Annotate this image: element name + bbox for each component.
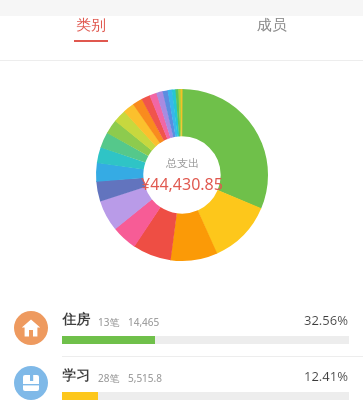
button[interactable]: 成员 <box>181 16 363 42</box>
button[interactable]: 学习 <box>0 357 363 409</box>
staticText: 32.56% <box>304 311 349 329</box>
staticText: 5,515.8 <box>128 371 162 385</box>
staticText: 类别 <box>76 16 106 35</box>
staticText: ¥44,430.85 <box>141 173 223 195</box>
staticText: 学习 <box>62 367 90 385</box>
other: 住房 <box>14 311 48 345</box>
button[interactable]: 住房 <box>0 299 363 356</box>
button[interactable]: 类别 <box>0 16 181 42</box>
staticText: 住房 <box>62 311 90 329</box>
staticText: 成员 <box>257 16 287 35</box>
staticText: 12.41% <box>304 367 349 385</box>
staticText: 13笔 <box>98 315 120 329</box>
other: 学习 <box>14 366 48 400</box>
staticText: 14,465 <box>128 315 160 329</box>
staticText: 28笔 <box>98 371 120 385</box>
staticText: 总支出 <box>166 156 199 170</box>
